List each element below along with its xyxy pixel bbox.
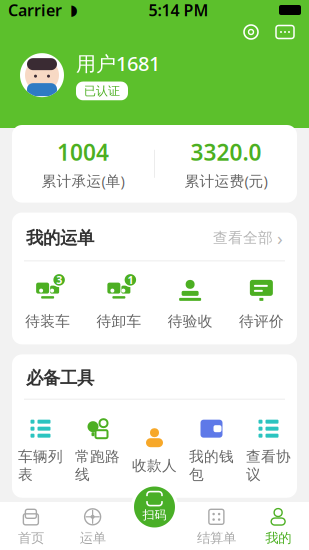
button[interactable]: 车辆列表 (12, 418, 69, 484)
staticText: 待装车 (25, 312, 70, 330)
staticText: 3 (56, 273, 62, 287)
staticText: 1 (127, 273, 133, 287)
staticText: 用户1681 (76, 50, 160, 77)
button[interactable]: 待评价 (226, 277, 297, 330)
button[interactable]: 运单 (62, 500, 124, 550)
staticText: › (277, 226, 283, 250)
staticText: 我的钱包 (189, 448, 234, 484)
staticText: 常跑路线 (75, 448, 120, 484)
staticText: Carrier (8, 0, 62, 21)
staticText: 收款人 (132, 457, 177, 475)
button[interactable]: 待验收 (154, 277, 226, 330)
staticText: 车辆列表 (18, 448, 63, 484)
staticText: 运单 (80, 530, 106, 546)
staticText: 累计承运(单) (41, 171, 124, 191)
button[interactable]: 1 (83, 277, 154, 330)
button[interactable]: 消息 (275, 22, 295, 42)
button[interactable]: 设置 (241, 22, 261, 42)
staticText: 3320.0 (190, 137, 261, 167)
staticText: 查看全部 (213, 229, 273, 247)
button[interactable]: 结算单 (185, 500, 247, 550)
staticText: 结算单 (197, 530, 236, 546)
button[interactable]: 查看协议 (240, 418, 297, 484)
button[interactable]: 扫码 (132, 485, 176, 529)
button[interactable]: 查看全部 (213, 226, 283, 250)
staticText: 我的运单 (26, 227, 94, 249)
staticText: 待评价 (239, 312, 284, 330)
staticText: 我的 (265, 530, 291, 546)
button[interactable]: 我的 (247, 500, 309, 550)
staticText: 待卸车 (96, 312, 141, 330)
button[interactable]: 3 (12, 277, 83, 330)
button[interactable]: 常跑路线 (69, 418, 126, 484)
button[interactable]: 我的钱包 (183, 418, 240, 484)
staticText: 待验收 (168, 312, 213, 330)
staticText: 5:14 PM (148, 0, 208, 21)
staticText: ◗ (70, 2, 78, 18)
staticText: 已认证 (84, 84, 120, 98)
staticText: 1004 (57, 137, 109, 167)
button[interactable]: 收款人 (126, 427, 183, 475)
staticText: 必备工具 (26, 367, 94, 389)
button[interactable]: 首页 (0, 500, 62, 550)
staticText: 累计运费(元) (184, 171, 267, 191)
button[interactable]: 头像 (20, 53, 64, 97)
staticText: 扫码 (142, 508, 166, 522)
staticText: 查看协议 (246, 448, 291, 484)
staticText: 首页 (18, 530, 44, 546)
